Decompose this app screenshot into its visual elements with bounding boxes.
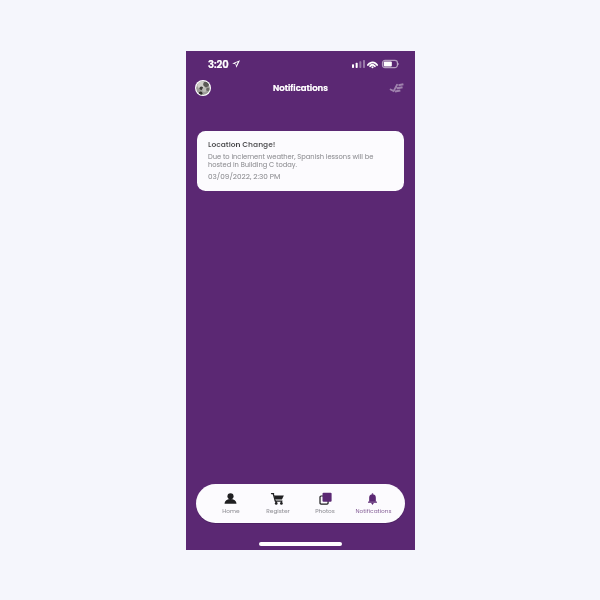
staticText: Notifications — [273, 82, 328, 94]
staticText: 3:20 — [208, 57, 229, 71]
staticText: Home — [222, 507, 240, 515]
staticText: 03/09/2022, 2:30 PM — [208, 171, 281, 181]
button[interactable]: Home — [207, 484, 254, 523]
staticText: Photos — [315, 507, 335, 515]
button[interactable]: Photos — [301, 484, 349, 523]
button[interactable]: Location Change! — [197, 131, 404, 191]
staticText: Notifications — [355, 507, 392, 515]
staticText: Location Change! — [208, 139, 276, 149]
button[interactable]: Register — [254, 484, 301, 523]
staticText: Register — [266, 507, 290, 515]
button[interactable]: Notifications — [349, 484, 397, 523]
button[interactable]: Mark all read — [388, 79, 406, 97]
button[interactable]: Profile — [195, 80, 211, 96]
staticText: Due to inclement weather, Spanish lesson… — [208, 152, 374, 169]
